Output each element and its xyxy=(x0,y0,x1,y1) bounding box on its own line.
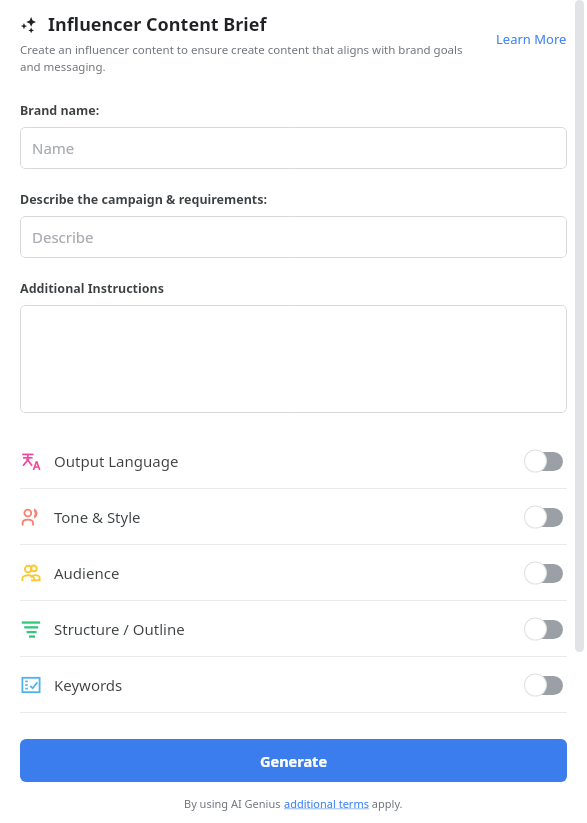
staticText: additional terms xyxy=(284,796,369,811)
staticText: Structure / Outline xyxy=(54,619,185,639)
button[interactable]: Tone & Style xyxy=(0,489,587,544)
staticText: Learn More xyxy=(496,30,567,48)
staticText: Tone & Style xyxy=(54,507,141,527)
staticText: Keywords xyxy=(54,675,123,695)
staticText: Brand name: xyxy=(20,102,100,119)
staticText: Audience xyxy=(54,563,120,583)
staticText: Create an influencer content to ensure c… xyxy=(20,42,486,74)
staticText: By using AI Genius xyxy=(184,796,284,811)
staticText: Output Language xyxy=(54,451,179,471)
staticText: Additional Instructions xyxy=(20,280,164,297)
staticText: Describe xyxy=(32,227,94,247)
button[interactable] xyxy=(20,305,567,413)
button[interactable]: Generate xyxy=(20,739,567,782)
other: Toggle xyxy=(523,673,567,697)
button[interactable]: Output Language xyxy=(0,433,587,488)
staticText: Name xyxy=(32,138,75,158)
button[interactable]: additional terms xyxy=(284,796,369,811)
staticText: Influencer Content Brief xyxy=(48,12,267,37)
staticText: apply. xyxy=(369,796,403,811)
other: Toggle xyxy=(523,617,567,641)
button[interactable]: Keywords xyxy=(0,657,587,712)
button[interactable]: Name xyxy=(20,127,567,169)
staticText: Describe the campaign & requirements: xyxy=(20,191,268,208)
other: Toggle xyxy=(523,561,567,585)
other: Toggle xyxy=(523,449,567,473)
staticText: Generate xyxy=(260,751,328,771)
button[interactable]: Learn More xyxy=(494,28,569,50)
button[interactable]: Structure / Outline xyxy=(0,601,587,656)
other: Toggle xyxy=(523,505,567,529)
button[interactable]: Audience xyxy=(0,545,587,600)
button[interactable]: Describe xyxy=(20,216,567,258)
